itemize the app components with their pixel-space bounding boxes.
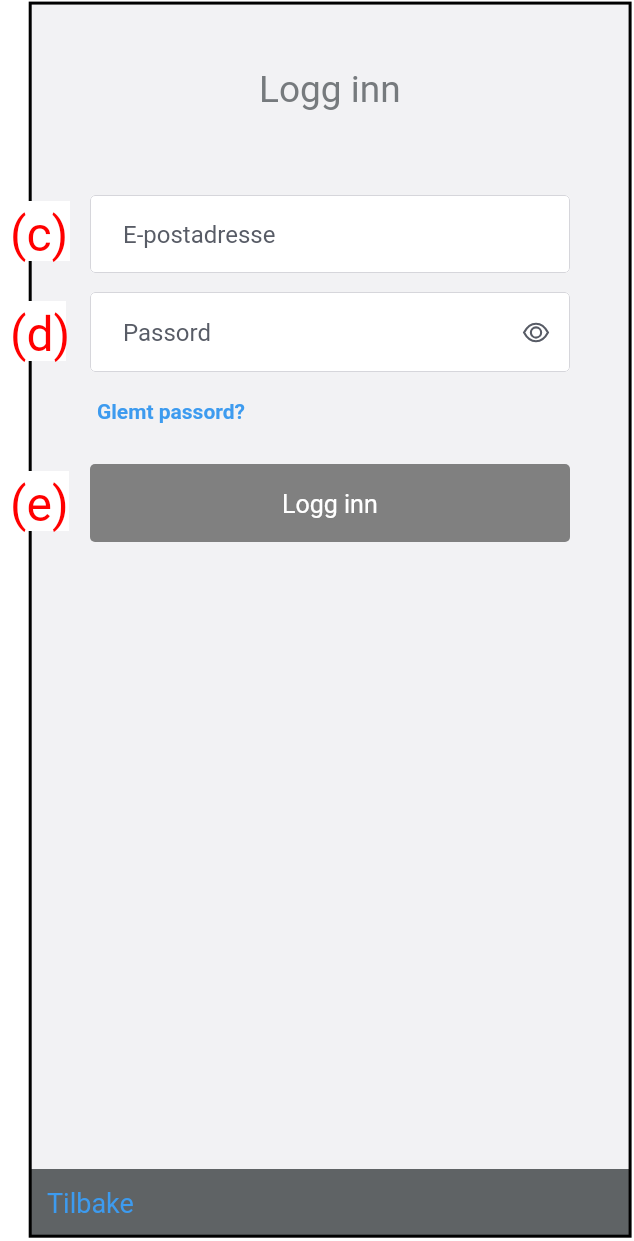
staticText: E-postadresse bbox=[123, 221, 276, 249]
staticText: Logg inn bbox=[282, 490, 378, 519]
button[interactable]: E-postadresse bbox=[90, 195, 570, 273]
staticText: (d) bbox=[10, 306, 71, 362]
button[interactable]: Tilbake bbox=[31, 1169, 629, 1235]
staticText: (e) bbox=[10, 476, 69, 532]
button[interactable]: Vis passord bbox=[514, 310, 558, 354]
button[interactable]: Logg inn bbox=[90, 464, 570, 542]
staticText: Glemt passord? bbox=[97, 400, 246, 425]
staticText: Passord bbox=[123, 319, 211, 347]
staticText: (c) bbox=[10, 206, 69, 262]
button[interactable]: Glemt passord? bbox=[97, 396, 246, 429]
button[interactable]: Passord bbox=[90, 292, 570, 372]
staticText: Tilbake bbox=[47, 1188, 134, 1220]
staticText: Logg inn bbox=[259, 68, 401, 111]
